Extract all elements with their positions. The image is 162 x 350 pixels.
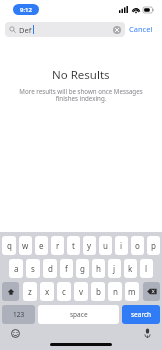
staticText: r bbox=[56, 240, 60, 251]
staticText: j bbox=[113, 263, 116, 274]
staticText: x bbox=[45, 286, 50, 297]
staticText: q bbox=[7, 240, 12, 251]
staticText: g bbox=[80, 263, 85, 274]
button[interactable]: q bbox=[2, 236, 16, 255]
button[interactable]: h bbox=[92, 259, 105, 278]
button[interactable]: x bbox=[40, 282, 54, 301]
button[interactable]: f bbox=[60, 259, 73, 278]
staticText: v bbox=[79, 286, 84, 297]
button[interactable]: m bbox=[125, 282, 139, 301]
button[interactable]: t bbox=[67, 236, 80, 255]
staticText: s bbox=[31, 263, 35, 274]
staticText: 123 bbox=[13, 310, 25, 319]
staticText: search bbox=[131, 310, 152, 319]
staticText: k bbox=[128, 263, 133, 274]
staticText: w bbox=[22, 240, 29, 251]
button[interactable]: b bbox=[91, 282, 105, 301]
button[interactable]: g bbox=[76, 259, 89, 278]
button[interactable]: u bbox=[99, 236, 112, 255]
staticText: e bbox=[39, 240, 44, 251]
staticText: Def bbox=[19, 25, 32, 35]
button[interactable]: j bbox=[108, 259, 121, 278]
button[interactable]: Clear text bbox=[113, 26, 121, 34]
staticText: z bbox=[28, 286, 32, 297]
staticText: b bbox=[96, 286, 101, 297]
button[interactable]: z bbox=[23, 282, 37, 301]
staticText: f bbox=[65, 263, 68, 274]
staticText: u bbox=[103, 240, 108, 251]
button[interactable]: e bbox=[35, 236, 48, 255]
button[interactable]: p bbox=[147, 236, 160, 255]
staticText: a bbox=[14, 263, 19, 274]
staticText: l bbox=[145, 263, 148, 274]
button[interactable]: c bbox=[57, 282, 71, 301]
staticText: n bbox=[113, 286, 118, 297]
button[interactable]: k bbox=[124, 259, 137, 278]
button[interactable]: w bbox=[19, 236, 32, 255]
button[interactable]: Delete bbox=[143, 282, 160, 301]
button[interactable]: search bbox=[122, 305, 160, 324]
staticText: t bbox=[72, 240, 75, 251]
button[interactable]: r bbox=[51, 236, 64, 255]
button[interactable]: d bbox=[43, 259, 57, 278]
staticText: i bbox=[120, 240, 123, 251]
button[interactable]: n bbox=[108, 282, 122, 301]
button[interactable]: Dictation bbox=[140, 326, 154, 340]
button[interactable]: s bbox=[26, 259, 40, 278]
button[interactable]: Emoji bbox=[8, 326, 22, 340]
staticText: Cancel bbox=[129, 24, 153, 34]
staticText: o bbox=[135, 240, 140, 251]
staticText: d bbox=[48, 263, 53, 274]
button[interactable]: i bbox=[115, 236, 128, 255]
button[interactable]: Shift bbox=[2, 282, 19, 301]
staticText: p bbox=[151, 240, 156, 251]
staticText: 9:12 bbox=[20, 6, 32, 14]
staticText: c bbox=[62, 286, 66, 297]
staticText: No Results bbox=[52, 67, 110, 83]
button[interactable]: v bbox=[74, 282, 88, 301]
button[interactable]: y bbox=[83, 236, 96, 255]
button[interactable]: a bbox=[9, 259, 23, 278]
staticText: y bbox=[87, 240, 92, 251]
button[interactable]: o bbox=[131, 236, 144, 255]
staticText: h bbox=[96, 263, 101, 274]
staticText: m bbox=[128, 286, 136, 297]
button[interactable]: space bbox=[38, 305, 119, 324]
button[interactable]: Cancel bbox=[125, 22, 157, 36]
staticText: space bbox=[70, 310, 88, 319]
button[interactable]: 123 bbox=[2, 305, 35, 324]
button[interactable]: Def bbox=[5, 22, 125, 37]
staticText: More results will be shown once Messages… bbox=[14, 87, 148, 103]
button[interactable]: l bbox=[140, 259, 153, 278]
